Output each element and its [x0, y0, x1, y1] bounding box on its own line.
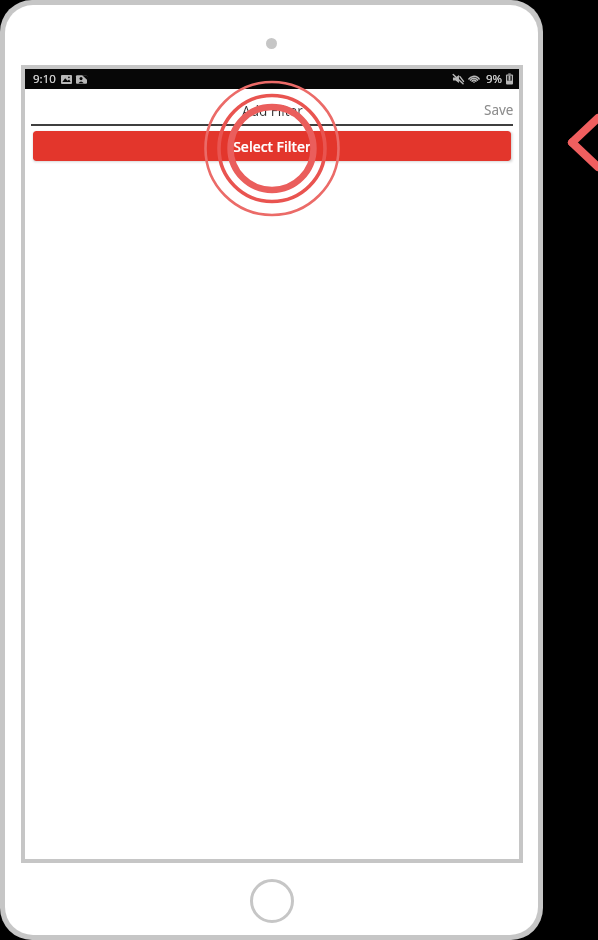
other: Back	[560, 100, 598, 190]
staticText: 9:10	[33, 71, 56, 87]
staticText: Select Filter	[233, 137, 311, 156]
button[interactable]: Select Filter	[33, 131, 511, 161]
button[interactable]: Save	[474, 96, 519, 124]
staticText: 9%	[486, 71, 503, 87]
staticText: Save	[484, 101, 514, 119]
staticText: Add Filter	[242, 102, 303, 120]
